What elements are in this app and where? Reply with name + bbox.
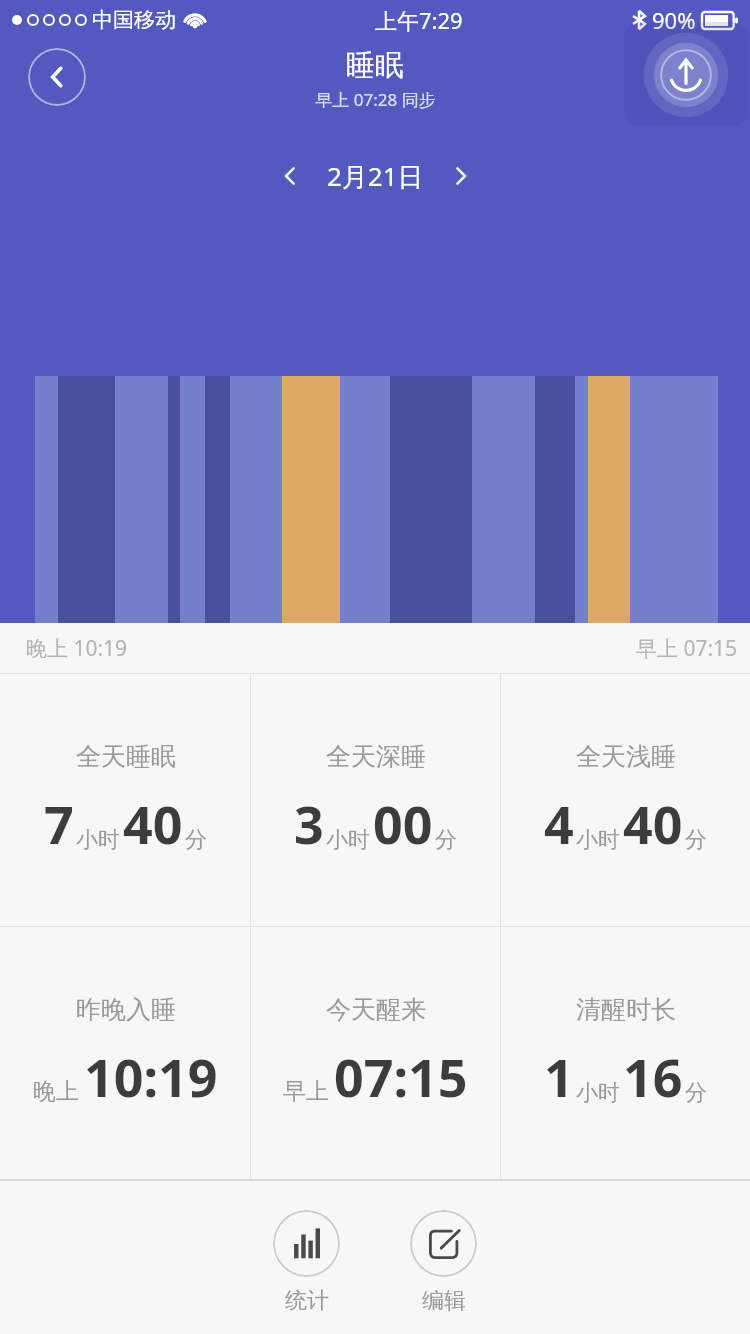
staticText: 今天醒来 [326,994,426,1025]
staticText: 晚上 [33,1077,79,1106]
button[interactable]: Back [28,48,86,106]
staticText: 早上 07:15 [636,634,738,663]
button[interactable]: 统计 [269,1206,344,1319]
staticText: 4 [544,788,574,859]
button[interactable]: 全天深睡 [251,674,500,926]
button[interactable]: Previous day [267,153,313,199]
button[interactable]: 清醒时长 [501,927,750,1179]
staticText: 00 [373,788,433,859]
staticText: 小时 [576,1079,620,1107]
staticText: 1 [544,1041,574,1112]
button[interactable]: 编辑 [406,1206,481,1319]
staticText: 睡眠 [346,47,404,84]
button[interactable]: 全天浅睡 [501,674,750,926]
staticText: 统计 [285,1287,329,1315]
button[interactable]: 今天醒来 [251,927,500,1179]
staticText: 昨晚入睡 [76,994,176,1025]
staticText: 中国移动 [92,7,176,33]
button[interactable]: Next day [438,153,484,199]
staticText: 小时 [576,826,620,854]
button[interactable]: 昨晚入睡 [0,927,250,1179]
staticText: 分 [185,826,207,854]
staticText: 早上 [283,1077,329,1106]
button[interactable]: 全天睡眠 [0,674,250,926]
staticText: 7 [44,788,74,859]
staticText: 40 [623,788,683,859]
staticText: 分 [685,1079,707,1107]
staticText: 3 [294,788,324,859]
staticText: 16 [623,1041,683,1112]
staticText: 分 [685,826,707,854]
staticText: 全天深睡 [326,741,426,772]
staticText: 2月21日 [327,158,424,194]
staticText: 晚上 10:19 [26,634,128,663]
staticText: 07:15 [334,1041,468,1112]
staticText: 90% [652,5,696,35]
staticText: 全天浅睡 [576,741,676,772]
staticText: 上午7:29 [375,5,463,35]
staticText: 清醒时长 [576,994,676,1025]
staticText: 分 [435,826,457,854]
staticText: 早上 07:28 同步 [315,88,436,111]
staticText: 10:19 [84,1041,218,1112]
staticText: 编辑 [422,1287,466,1315]
staticText: 小时 [76,826,120,854]
staticText: 40 [123,788,183,859]
staticText: 全天睡眠 [76,741,176,772]
staticText: 小时 [326,826,370,854]
button[interactable]: Sync [624,22,748,127]
